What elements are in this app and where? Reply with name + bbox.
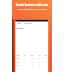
staticText: 1 — [25, 58, 26, 59]
staticText: 126 — [45, 58, 47, 59]
staticText: 120 — [31, 58, 33, 59]
staticText: Invoices, estimates and payments in one … — [18, 8, 46, 10]
staticText: 120 — [31, 65, 33, 66]
staticText: 126 — [45, 65, 47, 66]
staticText: Tax — [38, 55, 40, 56]
staticText: Design — [17, 58, 20, 59]
staticText: Item — [17, 55, 19, 56]
staticText: Total — [44, 55, 47, 56]
staticText: 5% — [38, 58, 40, 59]
staticText: 120 — [31, 62, 33, 63]
staticText: My Business — [17, 28, 24, 29]
staticText: Create business with ease — [16, 4, 48, 7]
staticText: 126 — [45, 62, 47, 63]
staticText: Invoice summary — [24, 23, 32, 24]
